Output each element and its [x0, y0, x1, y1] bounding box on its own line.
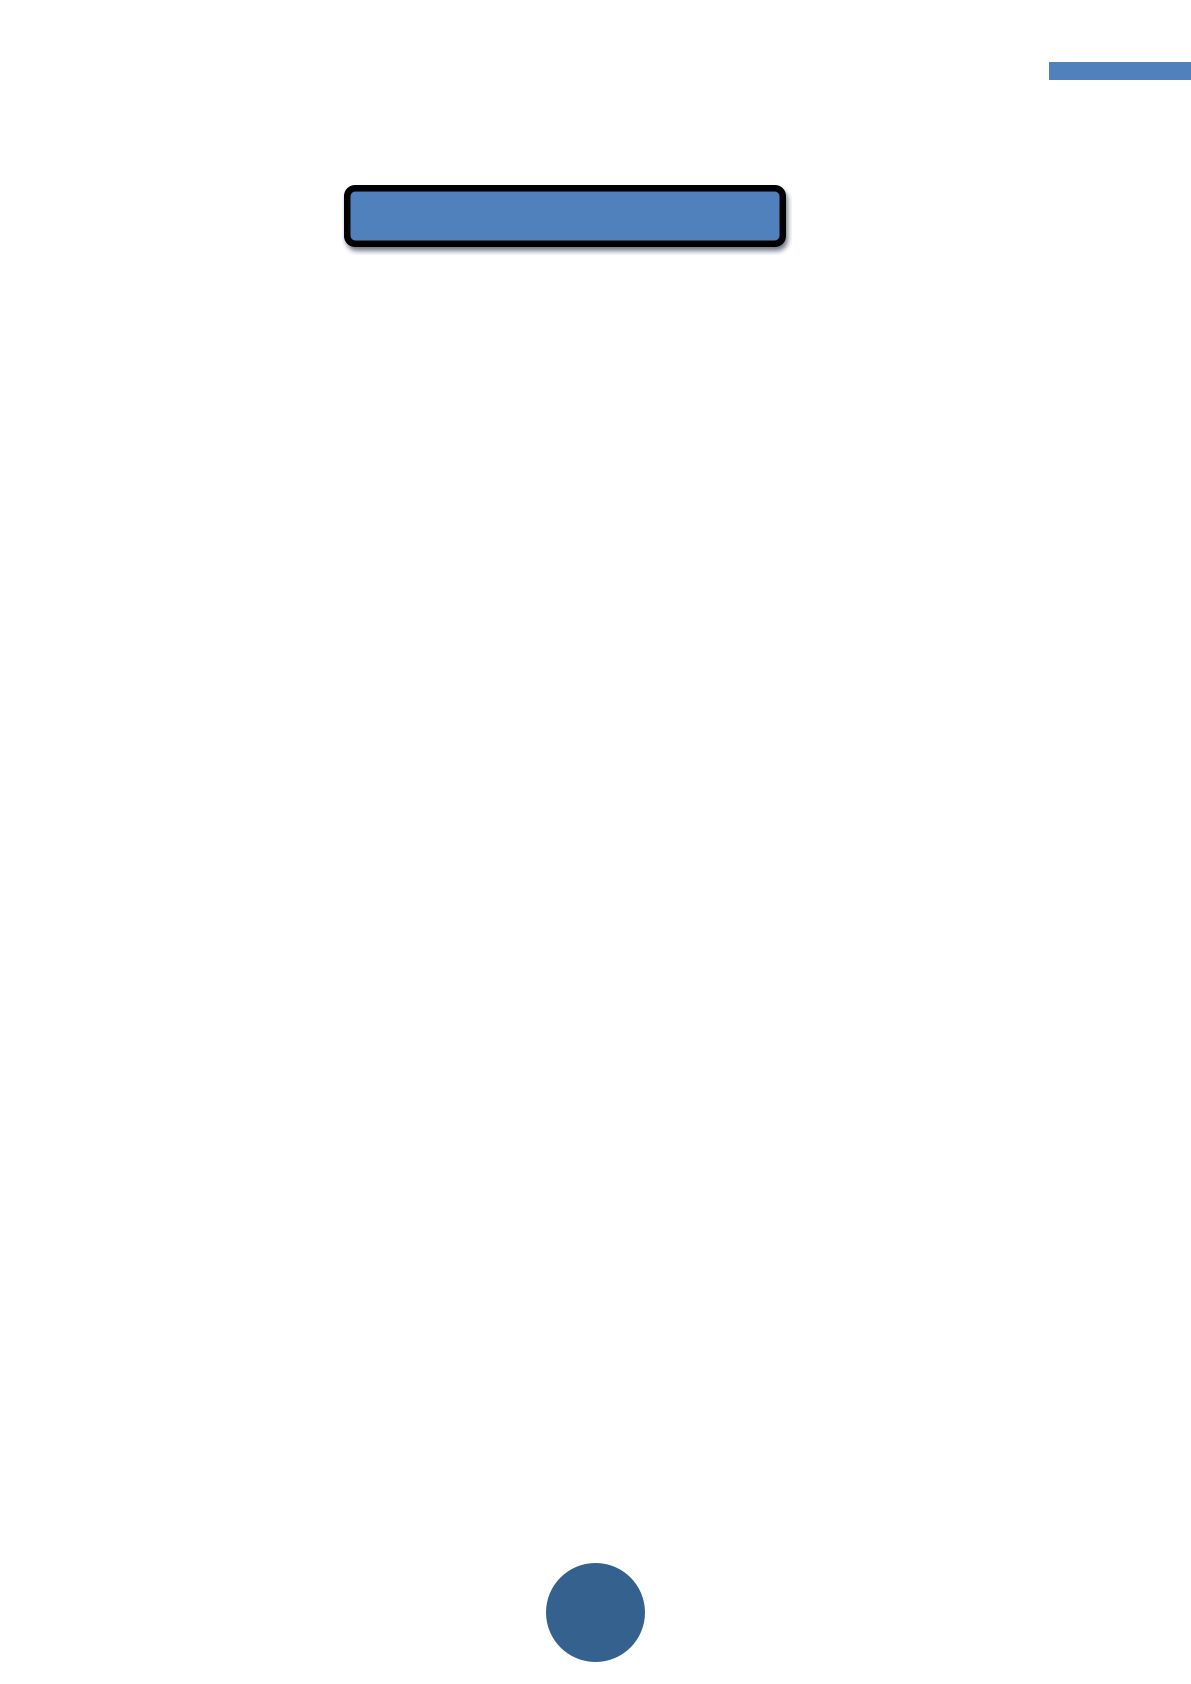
button[interactable]: Record [546, 1563, 645, 1662]
button[interactable]: Primary action [344, 185, 786, 247]
